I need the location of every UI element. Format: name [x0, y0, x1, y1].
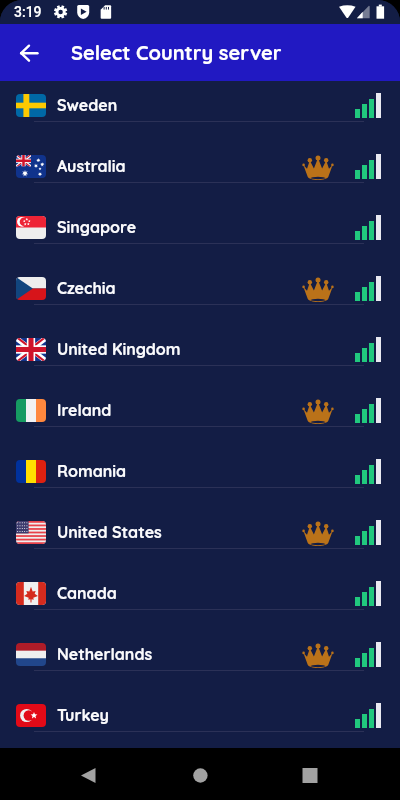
button[interactable]: Australia: [0, 122, 400, 183]
button[interactable]: Sweden: [0, 81, 400, 122]
button[interactable]: Singapore: [0, 183, 400, 244]
button[interactable]: Home: [170, 748, 230, 800]
button[interactable]: Canada: [0, 549, 400, 610]
staticText: Ireland: [57, 400, 112, 420]
staticText: Australia: [57, 156, 126, 176]
staticText: Select Country server: [71, 40, 282, 65]
button[interactable]: Czechia: [0, 244, 400, 305]
staticText: Turkey: [57, 705, 109, 725]
staticText: Sweden: [57, 95, 118, 115]
button[interactable]: Back: [58, 748, 118, 800]
button[interactable]: Netherlands: [0, 610, 400, 671]
button[interactable]: Turkey: [0, 671, 400, 732]
button[interactable]: Recent apps: [280, 748, 340, 800]
button[interactable]: Back: [10, 33, 50, 73]
staticText: Czechia: [57, 278, 116, 298]
staticText: Romania: [57, 461, 127, 481]
staticText: Netherlands: [57, 644, 153, 664]
button[interactable]: Ireland: [0, 366, 400, 427]
button[interactable]: United Kingdom: [0, 305, 400, 366]
staticText: Canada: [57, 583, 117, 603]
button[interactable]: Romania: [0, 427, 400, 488]
staticText: United States: [57, 522, 162, 542]
staticText: 3:19: [14, 4, 42, 20]
button[interactable]: United States: [0, 488, 400, 549]
staticText: United Kingdom: [57, 339, 181, 359]
staticText: Singapore: [57, 217, 137, 237]
